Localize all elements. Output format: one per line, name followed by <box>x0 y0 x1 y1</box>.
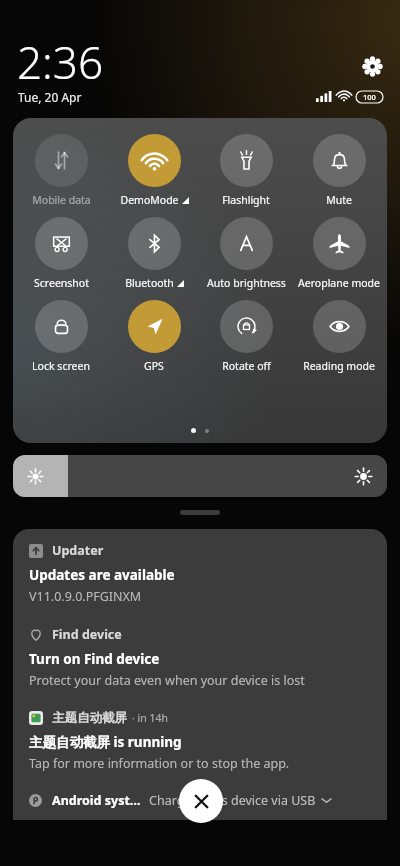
button[interactable]: Screenshot <box>16 217 106 290</box>
button[interactable]: Settings <box>357 51 387 81</box>
button[interactable]: Flashlight <box>201 134 291 207</box>
staticText: Protect your data even when your device … <box>29 672 305 689</box>
staticText: Tue, 20 Apr <box>18 89 82 105</box>
staticText: Reading mode <box>303 359 375 373</box>
button[interactable]: Reading mode <box>294 300 384 373</box>
staticText: 主题自动截屏 is running <box>29 733 182 751</box>
staticText: Rotate off <box>222 359 271 373</box>
staticText: V11.0.9.0.PFGINXM <box>29 588 142 605</box>
staticText: Mobile data <box>32 193 91 207</box>
button[interactable]: Auto brightness <box>201 217 291 290</box>
button[interactable]: Brightness <box>13 455 387 497</box>
button[interactable]: Updater <box>13 529 387 613</box>
staticText: DemoMode <box>120 193 179 207</box>
staticText: Tap for more information or to stop the … <box>29 755 290 772</box>
button[interactable]: 主题自动截屏 <box>13 697 387 780</box>
staticText: Auto brightness <box>207 276 286 290</box>
button[interactable]: Lock screen <box>16 300 106 373</box>
staticText: Turn on Find device <box>29 650 160 668</box>
staticText: Android syst… <box>52 792 141 809</box>
staticText: Screenshot <box>34 276 89 290</box>
staticText: Flashlight <box>222 193 270 207</box>
button[interactable]: Find device <box>13 613 387 697</box>
staticText: Updates are available <box>29 566 175 584</box>
staticText: Lock screen <box>32 359 90 373</box>
staticText: Charging this device via USB <box>149 792 316 809</box>
staticText: GPS <box>144 359 164 373</box>
button[interactable]: Mute <box>294 134 384 207</box>
staticText: Updater <box>52 542 104 559</box>
button[interactable]: Android syst… <box>13 780 387 820</box>
button[interactable]: Aeroplane mode <box>294 217 384 290</box>
button[interactable]: Rotate off <box>201 300 291 373</box>
staticText: Aeroplane mode <box>298 276 380 290</box>
staticText: 主题自动截屏 <box>52 710 127 726</box>
staticText: 100 <box>363 92 376 102</box>
staticText: · in 14h <box>132 711 168 725</box>
button[interactable]: DemoMode <box>109 134 199 207</box>
staticText: 2:36 <box>17 32 104 92</box>
staticText: Bluetooth <box>125 276 174 290</box>
staticText: Find device <box>52 626 122 643</box>
button[interactable]: Bluetooth <box>109 217 199 290</box>
staticText: Mute <box>326 193 352 207</box>
button[interactable]: Clear all notifications <box>179 779 223 823</box>
button[interactable]: Mobile data <box>16 134 106 207</box>
button[interactable]: GPS <box>109 300 199 373</box>
